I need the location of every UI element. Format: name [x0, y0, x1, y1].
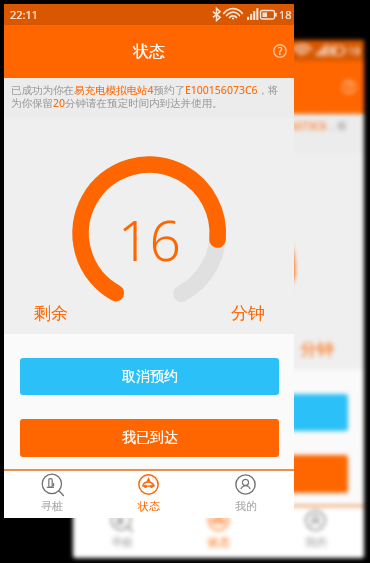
button[interactable]: Help: [333, 71, 364, 103]
staticText: 状态: [138, 499, 160, 513]
button[interactable]: 我已到达: [89, 455, 348, 493]
staticText: 寻桩: [111, 535, 133, 549]
staticText: 我的: [305, 535, 327, 549]
button[interactable]: 取消预约: [89, 394, 348, 431]
staticText: 分钟: [300, 339, 334, 360]
staticText: 已成功为你在易充电模拟电站4预约了E100156073C6，将为你保留20分钟请…: [11, 83, 284, 110]
staticText: 16: [118, 202, 181, 277]
staticText: 已成功为你在易充电模拟电站4预约了E100156073C6，将为你保留20分钟请…: [80, 119, 353, 146]
staticText: 我已到达: [122, 429, 178, 447]
button[interactable]: 寻桩: [73, 506, 170, 554]
button[interactable]: 我的: [267, 506, 364, 554]
staticText: ?: [347, 80, 352, 94]
staticText: 剩余: [103, 339, 137, 360]
button[interactable]: 我的: [197, 470, 294, 518]
button[interactable]: Help: [264, 35, 296, 67]
staticText: 状态: [208, 535, 230, 549]
staticText: 状态: [203, 78, 235, 98]
button[interactable]: 寻桩: [4, 470, 100, 518]
staticText: 22:11: [10, 7, 39, 22]
button[interactable]: 我已到达: [20, 419, 279, 457]
button[interactable]: 状态: [100, 470, 197, 518]
button[interactable]: 状态: [170, 506, 267, 554]
staticText: 18: [279, 7, 292, 22]
staticText: 18: [348, 43, 361, 58]
staticText: 我的: [235, 499, 257, 513]
staticText: 剩余: [34, 303, 68, 324]
staticText: ?: [278, 44, 283, 58]
staticText: 16: [187, 238, 250, 313]
staticText: 寻桩: [41, 499, 63, 513]
staticText: 取消预约: [191, 404, 247, 422]
staticText: 状态: [133, 42, 165, 62]
button[interactable]: 取消预约: [20, 358, 279, 395]
staticText: 取消预约: [122, 368, 178, 386]
staticText: 分钟: [231, 303, 265, 324]
staticText: 我已到达: [191, 465, 247, 483]
